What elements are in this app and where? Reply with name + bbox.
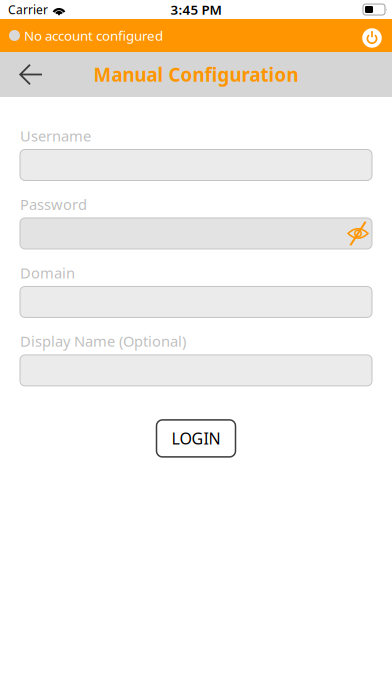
staticText: No account configured — [24, 27, 163, 44]
staticText: LOGIN — [171, 428, 220, 449]
staticText: Username — [20, 126, 91, 145]
staticText: 3:45 PM — [170, 1, 221, 18]
button[interactable]: LOGIN — [156, 420, 235, 457]
button[interactable]: Display Name (Optional) — [20, 355, 372, 386]
button[interactable]: Password — [20, 218, 372, 249]
button[interactable]: Power — [362, 25, 382, 45]
staticText: Password — [20, 194, 87, 214]
staticText: Carrier — [8, 1, 48, 17]
staticText: Domain — [20, 263, 75, 282]
staticText: Manual Configuration — [93, 62, 298, 87]
button[interactable]: Show password — [346, 220, 372, 246]
button[interactable]: Domain — [20, 286, 372, 317]
staticText: Display Name (Optional) — [20, 331, 186, 351]
button[interactable]: Back — [0, 57, 48, 91]
